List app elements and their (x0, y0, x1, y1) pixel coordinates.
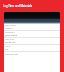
staticText: Start Time (5, 38, 15, 41)
button[interactable]: Start Time (4, 38, 60, 45)
staticText: 1042-A (5, 26, 13, 29)
staticText: Technician (5, 31, 15, 34)
button[interactable]: Job Number (4, 24, 60, 31)
staticText: 3.5 (5, 47, 9, 50)
button[interactable]: Hours (4, 45, 60, 52)
staticText: Log Time and Materials (3, 4, 33, 8)
button[interactable]: Technician (4, 31, 60, 38)
staticText: Materials Used (5, 53, 19, 56)
staticText: Job Number (5, 24, 16, 27)
staticText: Hours (5, 45, 11, 48)
staticText: 08:30 AM (5, 40, 16, 43)
staticText: John Smith (5, 33, 18, 36)
